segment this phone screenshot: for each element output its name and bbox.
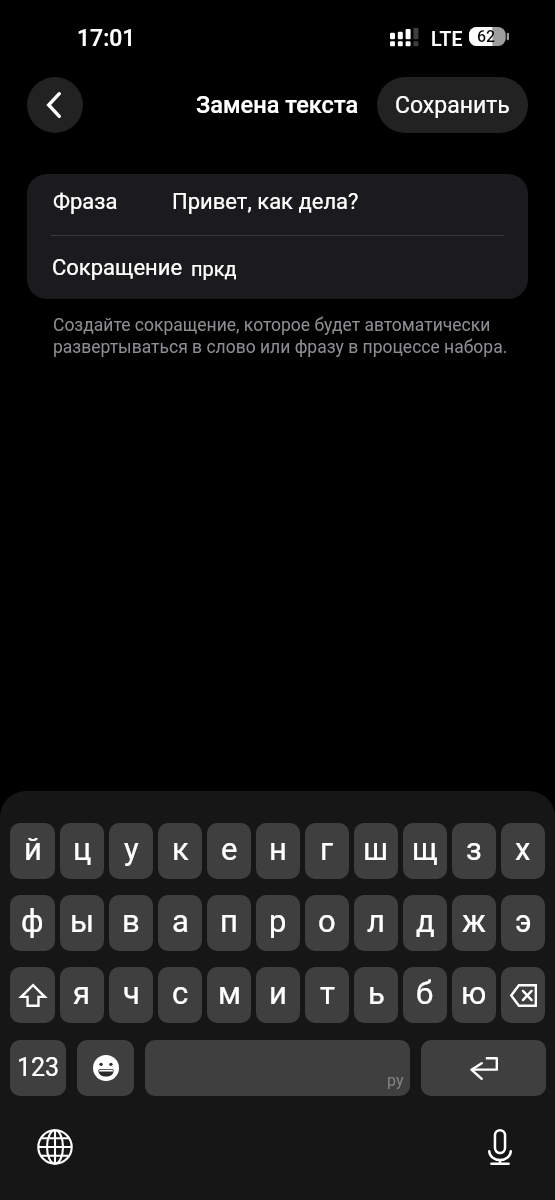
- staticText: Сохранить: [395, 92, 510, 119]
- button[interactable]: в: [109, 895, 153, 951]
- staticText: з: [466, 831, 482, 867]
- staticText: ь: [368, 975, 385, 1011]
- staticText: ру: [387, 1071, 404, 1090]
- button[interactable]: ы: [60, 895, 104, 951]
- button[interactable]: ь: [354, 967, 398, 1023]
- button[interactable]: т: [305, 967, 349, 1023]
- button[interactable]: п: [207, 895, 251, 951]
- staticText: ч: [123, 975, 140, 1011]
- button[interactable]: к: [158, 823, 202, 879]
- button[interactable]: ц: [60, 823, 104, 879]
- button[interactable]: э: [501, 895, 545, 951]
- button[interactable]: о: [305, 895, 349, 951]
- staticText: х: [515, 831, 531, 867]
- button[interactable]: б: [403, 967, 447, 1023]
- staticText: Создайте сокращение, которое будет автом…: [53, 315, 491, 336]
- button[interactable]: ж: [452, 895, 496, 951]
- button[interactable]: н: [256, 823, 300, 879]
- staticText: о: [318, 903, 336, 939]
- button[interactable]: р: [256, 895, 300, 951]
- button[interactable]: Фраза: [27, 174, 528, 229]
- staticText: ж: [462, 903, 486, 939]
- button[interactable]: с: [158, 967, 202, 1023]
- button[interactable]: Change keyboard language: [33, 1125, 77, 1169]
- button[interactable]: Shift: [10, 967, 55, 1023]
- staticText: б: [416, 975, 434, 1011]
- button[interactable]: Enter: [421, 1040, 546, 1096]
- button[interactable]: х: [501, 823, 545, 879]
- staticText: 62: [477, 27, 496, 46]
- staticText: э: [515, 903, 532, 939]
- button[interactable]: е: [207, 823, 251, 879]
- staticText: LTE: [431, 28, 463, 51]
- staticText: пркд: [191, 257, 237, 280]
- staticText: ш: [363, 831, 389, 867]
- staticText: 17:01: [77, 25, 136, 52]
- button[interactable]: м: [207, 967, 251, 1023]
- staticText: ф: [21, 903, 44, 939]
- button[interactable]: Back: [27, 77, 83, 133]
- staticText: к: [172, 831, 189, 867]
- button[interactable]: щ: [403, 823, 447, 879]
- staticText: у: [124, 831, 139, 867]
- button[interactable]: 123: [10, 1040, 66, 1096]
- staticText: й: [24, 831, 42, 867]
- button[interactable]: Сохранить: [377, 77, 528, 133]
- button[interactable]: ч: [109, 967, 153, 1023]
- button[interactable]: з: [452, 823, 496, 879]
- button[interactable]: ф: [10, 895, 55, 951]
- staticText: р: [269, 903, 287, 939]
- staticText: и: [269, 975, 287, 1011]
- button[interactable]: а: [158, 895, 202, 951]
- staticText: ы: [70, 903, 95, 939]
- button[interactable]: г: [305, 823, 349, 879]
- staticText: развертываться в слово или фразу в проце…: [53, 337, 508, 358]
- staticText: я: [73, 975, 91, 1011]
- button[interactable]: Voice input: [478, 1125, 522, 1169]
- staticText: т: [320, 975, 335, 1011]
- staticText: д: [416, 903, 435, 939]
- button[interactable]: Сокращение: [27, 237, 528, 299]
- button[interactable]: Space: [145, 1040, 410, 1096]
- staticText: н: [269, 831, 287, 867]
- button[interactable]: й: [10, 823, 55, 879]
- staticText: ю: [461, 975, 487, 1011]
- button[interactable]: я: [60, 967, 104, 1023]
- staticText: Замена текста: [196, 91, 359, 119]
- staticText: щ: [412, 831, 438, 867]
- staticText: Фраза: [53, 189, 118, 215]
- button[interactable]: д: [403, 895, 447, 951]
- staticText: ц: [73, 831, 92, 867]
- staticText: в: [122, 903, 140, 939]
- staticText: с: [172, 975, 189, 1011]
- staticText: а: [172, 903, 189, 939]
- button[interactable]: Emoji: [77, 1040, 134, 1096]
- staticText: 123: [17, 1053, 60, 1082]
- staticText: Привет, как дела?: [172, 189, 359, 215]
- button[interactable]: ш: [354, 823, 398, 879]
- staticText: е: [221, 831, 238, 867]
- button[interactable]: ю: [452, 967, 496, 1023]
- staticText: Сокращение: [52, 255, 183, 281]
- button[interactable]: у: [109, 823, 153, 879]
- button[interactable]: и: [256, 967, 300, 1023]
- staticText: м: [218, 975, 241, 1011]
- staticText: п: [220, 903, 238, 939]
- button[interactable]: л: [354, 895, 398, 951]
- staticText: г: [320, 831, 334, 867]
- staticText: л: [367, 903, 385, 939]
- button[interactable]: Backspace: [501, 967, 545, 1023]
